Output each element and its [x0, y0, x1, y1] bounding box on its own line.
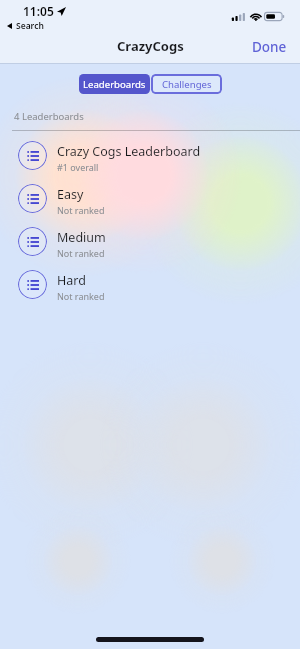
- staticText: Leaderboards: [83, 78, 146, 91]
- button[interactable]: Leaderboards: [79, 74, 150, 94]
- staticText: CrazyCogs: [117, 37, 184, 55]
- button[interactable]: Easy: [0, 177, 300, 220]
- staticText: Not ranked: [57, 204, 105, 216]
- staticText: Not ranked: [57, 247, 105, 259]
- staticText: Challenges: [162, 78, 212, 91]
- button[interactable]: Crazy Cogs Leaderboard: [0, 134, 300, 177]
- button[interactable]: Challenges: [151, 74, 222, 94]
- staticText: 4 Leaderboards: [14, 110, 84, 123]
- staticText: Easy: [57, 186, 84, 203]
- button[interactable]: Done: [252, 38, 300, 63]
- staticText: Done: [252, 38, 287, 56]
- staticText: Not ranked: [57, 290, 105, 302]
- staticText: Search: [16, 20, 44, 32]
- button[interactable]: Hard: [0, 263, 300, 306]
- staticText: #1 overall: [57, 161, 99, 173]
- staticText: Medium: [57, 229, 106, 246]
- staticText: Hard: [57, 272, 86, 289]
- button[interactable]: Medium: [0, 220, 300, 263]
- staticText: Crazy Cogs Leaderboard: [57, 143, 201, 160]
- staticText: 11:05: [23, 3, 54, 19]
